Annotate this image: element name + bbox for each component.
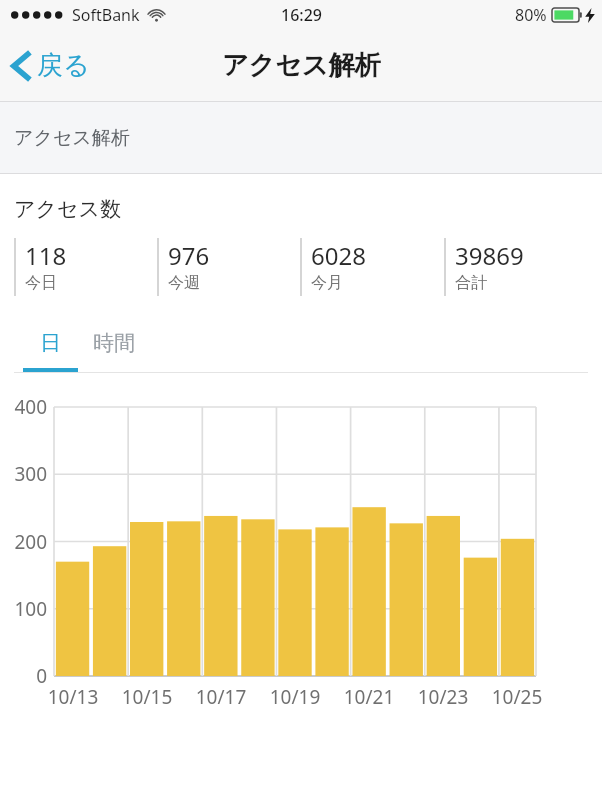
staticText: 200 — [0, 529, 47, 555]
staticText: 10/15 — [110, 684, 184, 710]
staticText: 400 — [0, 394, 47, 420]
staticText: 10/25 — [480, 684, 554, 710]
staticText: 10/17 — [184, 684, 258, 710]
staticText: 10/23 — [406, 684, 480, 710]
other: Back — [11, 49, 32, 83]
staticText: 10/19 — [258, 684, 332, 710]
staticText: 今週 — [168, 273, 200, 293]
button[interactable]: 日 — [23, 326, 78, 372]
staticText: アクセス解析 — [14, 126, 130, 150]
staticText: 今日 — [25, 273, 57, 293]
staticText: 10/13 — [36, 684, 110, 710]
staticText: 今月 — [311, 273, 343, 293]
staticText: 39869 — [455, 239, 524, 272]
button[interactable]: 時間 — [78, 326, 150, 372]
staticText: 300 — [0, 461, 47, 487]
staticText: 6028 — [311, 239, 366, 272]
staticText: 976 — [168, 239, 210, 272]
staticText: 日 — [40, 330, 61, 356]
staticText: アクセス数 — [14, 196, 121, 222]
staticText: 戻る — [37, 49, 90, 82]
staticText: 80% — [515, 4, 547, 26]
staticText: 10/21 — [332, 684, 406, 710]
staticText: アクセス解析 — [222, 49, 381, 82]
staticText: 合計 — [455, 273, 487, 293]
staticText: 16:29 — [281, 4, 322, 26]
staticText: 118 — [25, 239, 67, 272]
staticText: 0 — [0, 663, 47, 689]
staticText: 時間 — [93, 330, 135, 356]
staticText: 100 — [0, 596, 47, 622]
button[interactable]: Back — [0, 30, 106, 101]
staticText: SoftBank — [72, 4, 140, 26]
